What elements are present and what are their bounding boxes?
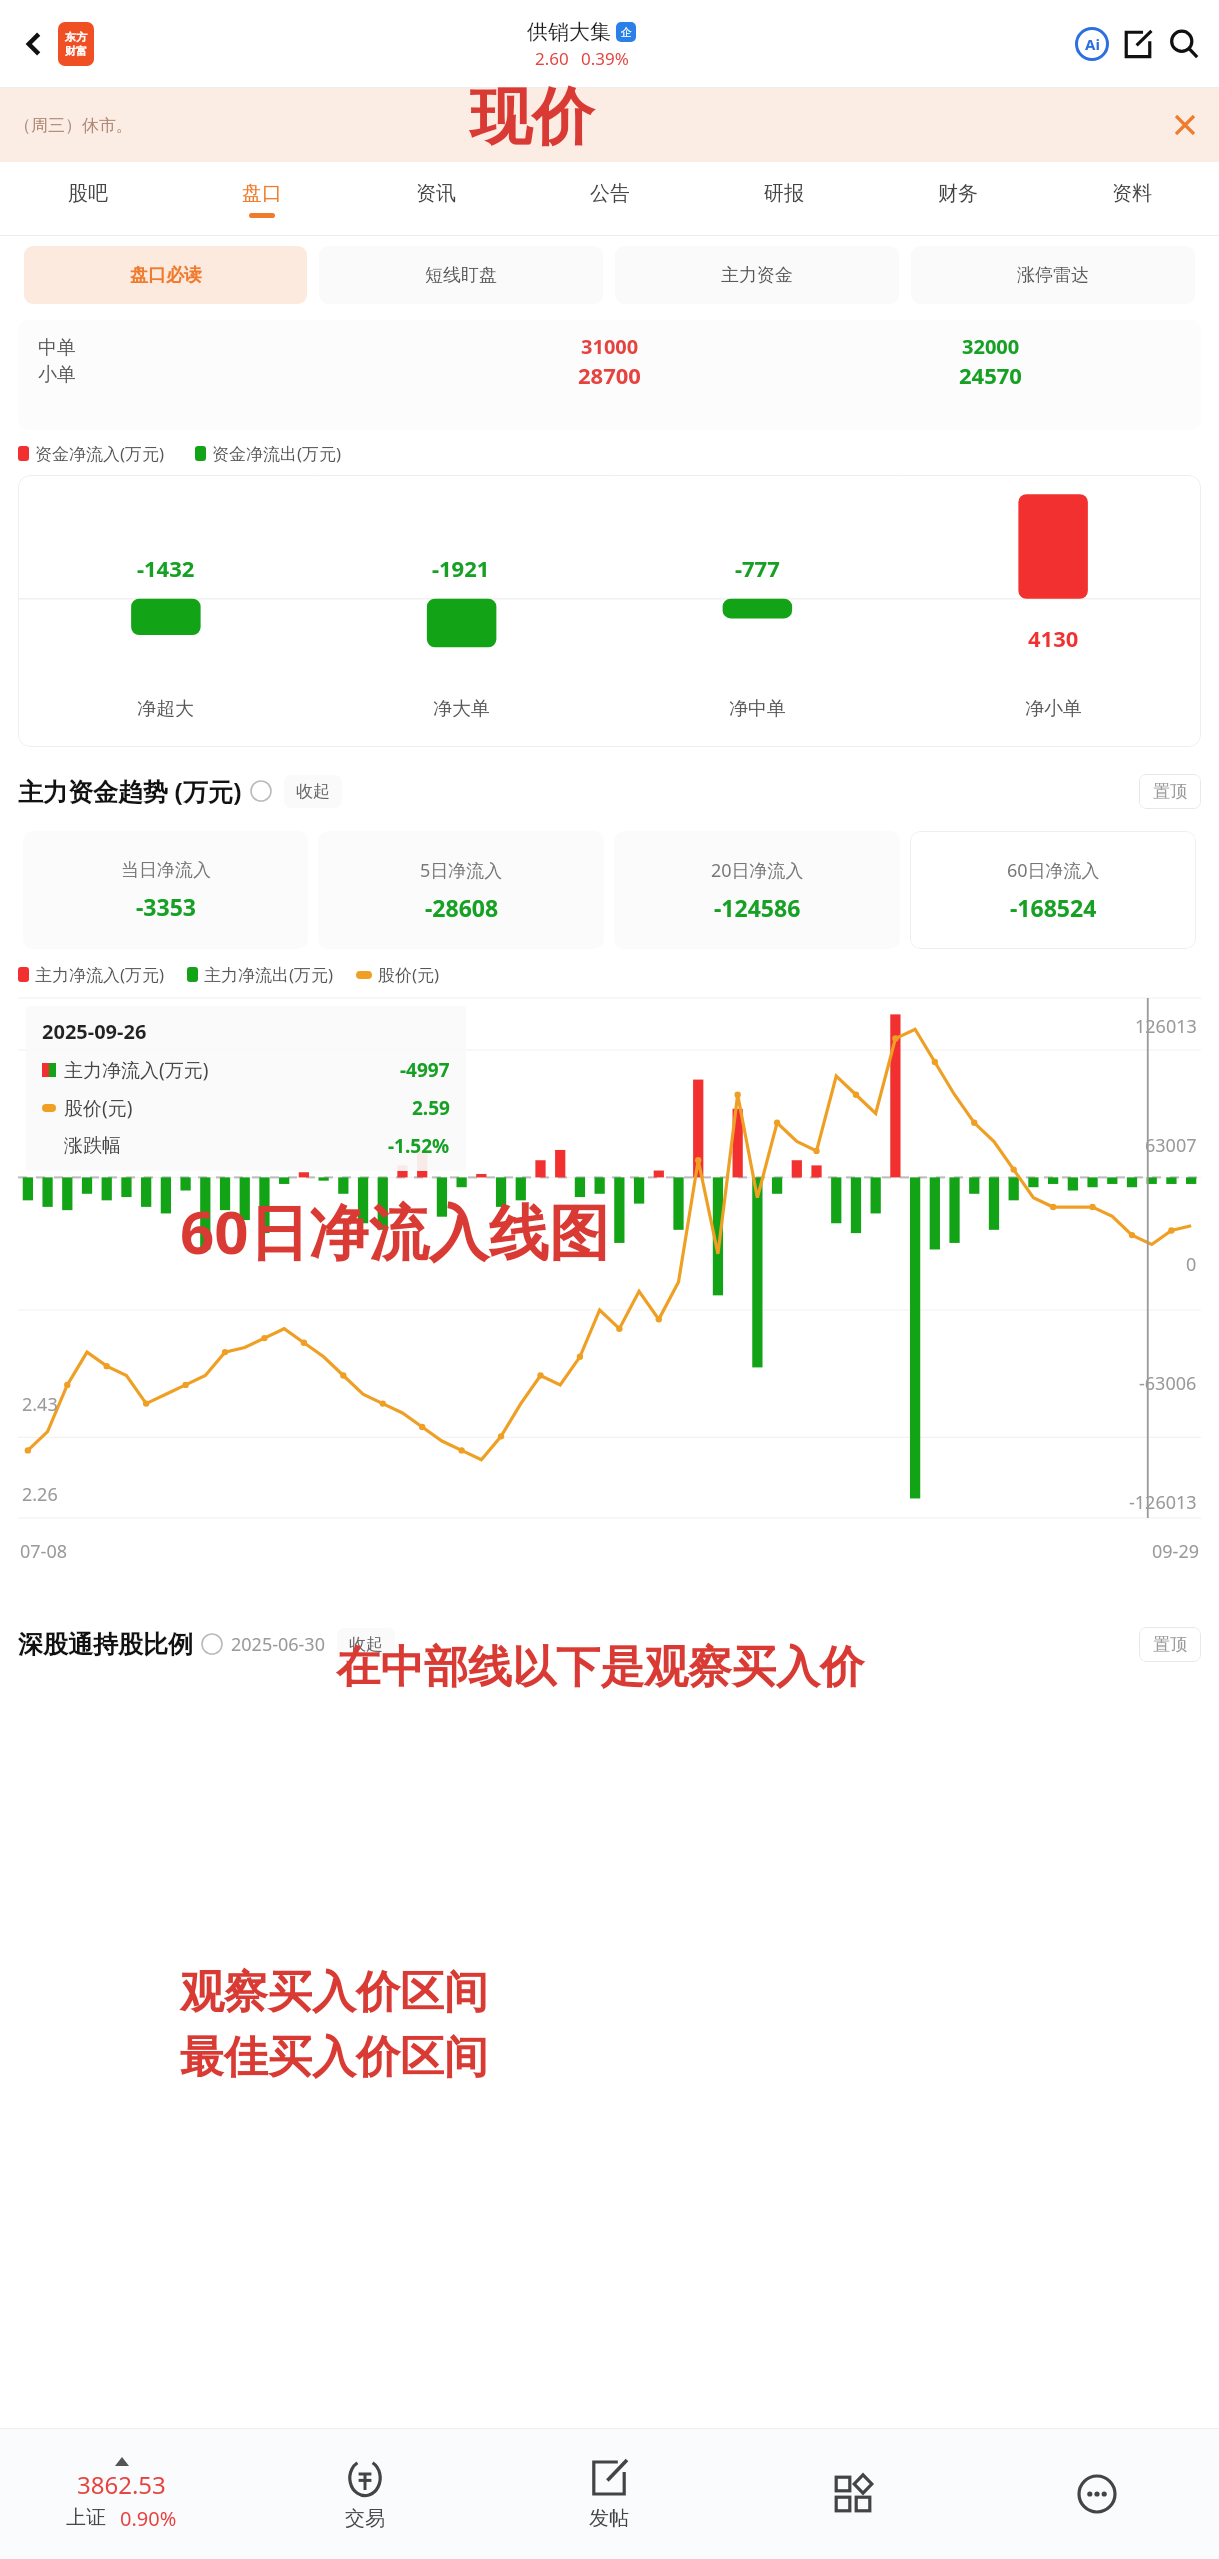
- button[interactable]: 20日净流入: [614, 831, 900, 949]
- staticText: -3353: [136, 891, 196, 922]
- staticText: 资金净流出(万元): [212, 442, 342, 465]
- staticText: 置顶: [1153, 1634, 1187, 1655]
- staticText: 4130: [1028, 623, 1079, 653]
- staticText: 中单: [38, 336, 76, 360]
- button[interactable]: 收起: [284, 775, 342, 808]
- staticText: 60日净流入: [1007, 858, 1100, 883]
- staticText: 涨跌幅: [64, 1134, 121, 1158]
- staticText: 63007: [1145, 1133, 1197, 1158]
- staticText: 股吧: [68, 181, 108, 206]
- staticText: -124586: [714, 892, 801, 923]
- staticText: 主力资金趋势 (万元): [18, 774, 242, 808]
- button[interactable]: 研报: [697, 162, 871, 236]
- button[interactable]: 主力资金: [615, 246, 899, 304]
- staticText: 发帖: [589, 2506, 629, 2531]
- staticText: 2025-09-26: [42, 1018, 147, 1045]
- staticText: -1921: [432, 553, 490, 583]
- staticText: -126013: [1129, 1490, 1197, 1515]
- button[interactable]: 当日净流入: [23, 831, 308, 949]
- button[interactable]: 置顶: [1139, 1627, 1201, 1662]
- button[interactable]: 盘口必读: [24, 246, 307, 304]
- staticText: 净超大: [137, 697, 194, 721]
- staticText: 财富: [65, 44, 87, 58]
- button[interactable]: 东方财富: [58, 22, 94, 66]
- staticText: 31000: [581, 333, 639, 360]
- button[interactable]: 收起: [337, 1628, 395, 1661]
- staticText: 上证: [66, 2505, 106, 2530]
- staticText: -1432: [137, 553, 195, 583]
- staticText: 2.60: [535, 47, 569, 70]
- staticText: 2.43: [22, 1392, 58, 1417]
- staticText: 2.59: [412, 1095, 450, 1121]
- button[interactable]: 置顶: [1139, 774, 1201, 809]
- staticText: 深股通持股比例: [18, 1629, 193, 1660]
- button[interactable]: 发帖: [487, 2429, 731, 2559]
- button[interactable]: 3862.53: [0, 2429, 243, 2559]
- staticText: 主力资金: [721, 264, 793, 287]
- button[interactable]: AI: [1069, 21, 1115, 67]
- staticText: 净大单: [433, 697, 490, 721]
- staticText: -1.52%: [388, 1133, 450, 1159]
- staticText: 主力净流入(万元): [64, 1057, 209, 1083]
- staticText: 收起: [349, 1634, 383, 1655]
- staticText: 公告: [590, 181, 630, 206]
- button[interactable]: More apps: [731, 2429, 975, 2559]
- staticText: 主力净流出(万元): [204, 963, 334, 986]
- button[interactable]: More: [975, 2429, 1219, 2559]
- button[interactable]: 60日净流入: [910, 831, 1196, 949]
- button[interactable]: 资讯: [349, 162, 523, 236]
- staticText: 净小单: [1025, 697, 1082, 721]
- staticText: 东方: [65, 30, 87, 44]
- staticText: -168524: [1010, 892, 1097, 923]
- staticText: 现价: [470, 78, 594, 156]
- staticText: 短线盯盘: [425, 264, 497, 287]
- staticText: 07-08: [20, 1539, 67, 1564]
- button[interactable]: Share: [1115, 21, 1161, 67]
- button[interactable]: Back: [12, 22, 56, 66]
- staticText: 财务: [938, 181, 978, 206]
- staticText: 供销大集: [527, 19, 611, 45]
- button[interactable]: 盘口: [175, 162, 349, 236]
- staticText: Ai: [1085, 34, 1100, 54]
- button[interactable]: 财务: [871, 162, 1045, 236]
- staticText: 交易: [345, 2506, 385, 2531]
- staticText: 5日净流入: [420, 858, 503, 883]
- staticText: 126013: [1135, 1014, 1197, 1039]
- button[interactable]: 短线盯盘: [319, 246, 603, 304]
- staticText: 资料: [1112, 181, 1152, 206]
- staticText: 股价(元): [378, 963, 440, 986]
- staticText: 0.90%: [120, 2505, 177, 2532]
- staticText: 0.39%: [581, 47, 629, 70]
- button[interactable]: 涨停雷达: [911, 246, 1195, 304]
- staticText: 主力净流入(万元): [35, 963, 165, 986]
- staticText: 置顶: [1153, 781, 1187, 802]
- staticText: 在中部线以下是观察买入价: [255, 1640, 945, 1695]
- staticText: 最佳买入价区间: [180, 2030, 488, 2085]
- staticText: 20日净流入: [711, 858, 804, 883]
- staticText: -28608: [425, 892, 499, 923]
- staticText: 股价(元): [64, 1095, 133, 1121]
- staticText: -63006: [1139, 1371, 1197, 1396]
- staticText: 60日净流入线图: [180, 1190, 609, 1272]
- staticText: 盘口必读: [130, 264, 202, 287]
- staticText: -777: [735, 553, 780, 583]
- button[interactable]: 资料: [1045, 162, 1219, 236]
- staticText: 资金净流入(万元): [35, 442, 165, 465]
- button[interactable]: 公告: [523, 162, 697, 236]
- button[interactable]: 股吧: [0, 162, 175, 236]
- staticText: （周三）休市。: [14, 115, 133, 136]
- staticText: 24570: [959, 360, 1022, 390]
- button[interactable]: Close: [1165, 105, 1205, 145]
- staticText: 盘口: [242, 181, 282, 206]
- staticText: 2.26: [22, 1482, 58, 1507]
- staticText: 研报: [764, 181, 804, 206]
- staticText: 小单: [38, 363, 76, 387]
- staticText: 观察买入价区间: [180, 1965, 488, 2020]
- button[interactable]: 5日净流入: [318, 831, 604, 949]
- button[interactable]: 交易: [243, 2429, 487, 2559]
- staticText: 09-29: [1152, 1539, 1199, 1564]
- button[interactable]: Search: [1161, 21, 1207, 67]
- staticText: 资讯: [416, 181, 456, 206]
- staticText: 2025-06-30: [231, 1632, 325, 1657]
- staticText: 3862.53: [77, 2468, 166, 2501]
